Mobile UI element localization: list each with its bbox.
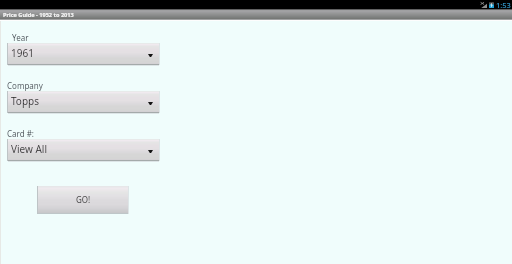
button[interactable]: GO! xyxy=(38,186,128,213)
other: Mobile signal xyxy=(480,2,487,8)
other: Battery charging xyxy=(489,2,494,8)
staticText: Year xyxy=(12,32,29,43)
staticText: Price Guide - 1952 to 2013 xyxy=(3,11,74,19)
button[interactable]: 1961 xyxy=(8,43,159,64)
staticText: GO! xyxy=(76,194,91,205)
button[interactable]: View All xyxy=(8,139,159,160)
staticText: 1961 xyxy=(11,46,34,60)
staticText: Topps xyxy=(11,94,39,108)
staticText: Company xyxy=(7,80,43,91)
staticText: 1:53 xyxy=(496,0,511,9)
button[interactable]: Topps xyxy=(8,91,159,112)
staticText: Card #: xyxy=(7,128,34,139)
staticText: View All xyxy=(11,142,48,156)
